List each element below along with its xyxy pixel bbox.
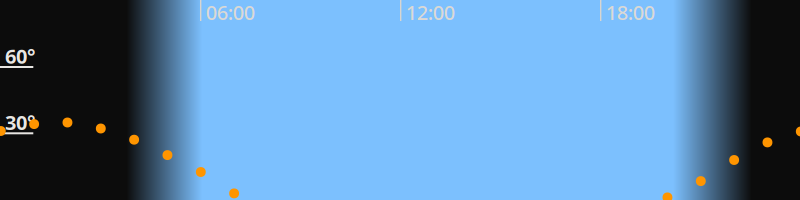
staticText: 60°: [5, 43, 35, 69]
staticText: 06:00: [206, 0, 255, 26]
staticText: 12:00: [406, 0, 455, 26]
staticText: 18:00: [606, 0, 655, 26]
staticText: 30°: [5, 109, 35, 136]
button[interactable]: Hourly temperature chart: [0, 0, 800, 200]
